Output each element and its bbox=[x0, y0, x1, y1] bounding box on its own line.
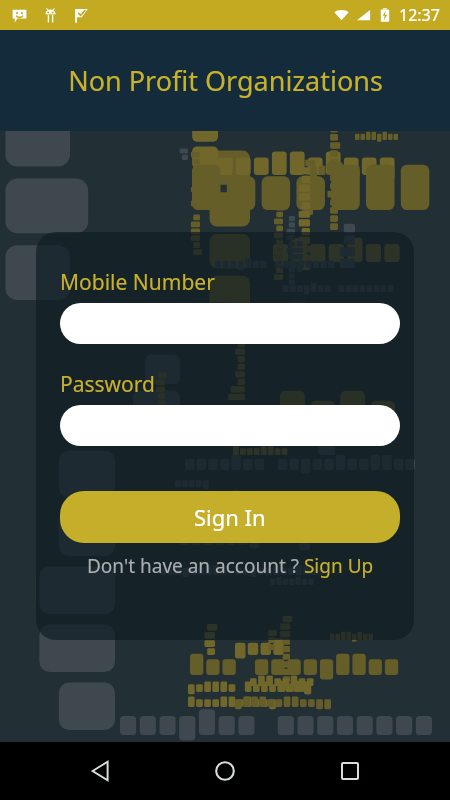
button[interactable]: Sign Up bbox=[299, 553, 374, 579]
button[interactable] bbox=[60, 405, 400, 446]
staticText: Don't have an account ? bbox=[87, 553, 299, 579]
button[interactable] bbox=[60, 303, 400, 344]
staticText: Sign Up bbox=[299, 553, 374, 579]
button[interactable]: Back bbox=[77, 747, 125, 795]
button[interactable]: Recent apps bbox=[326, 747, 374, 795]
button[interactable]: Sign In bbox=[60, 491, 400, 543]
button[interactable]: Home bbox=[201, 747, 249, 795]
staticText: Mobile Number bbox=[60, 268, 215, 297]
staticText: 12:37 bbox=[399, 4, 440, 26]
staticText: Non Profit Organizations bbox=[68, 62, 383, 99]
staticText: Password bbox=[60, 370, 155, 399]
staticText: Sign In bbox=[194, 502, 266, 532]
